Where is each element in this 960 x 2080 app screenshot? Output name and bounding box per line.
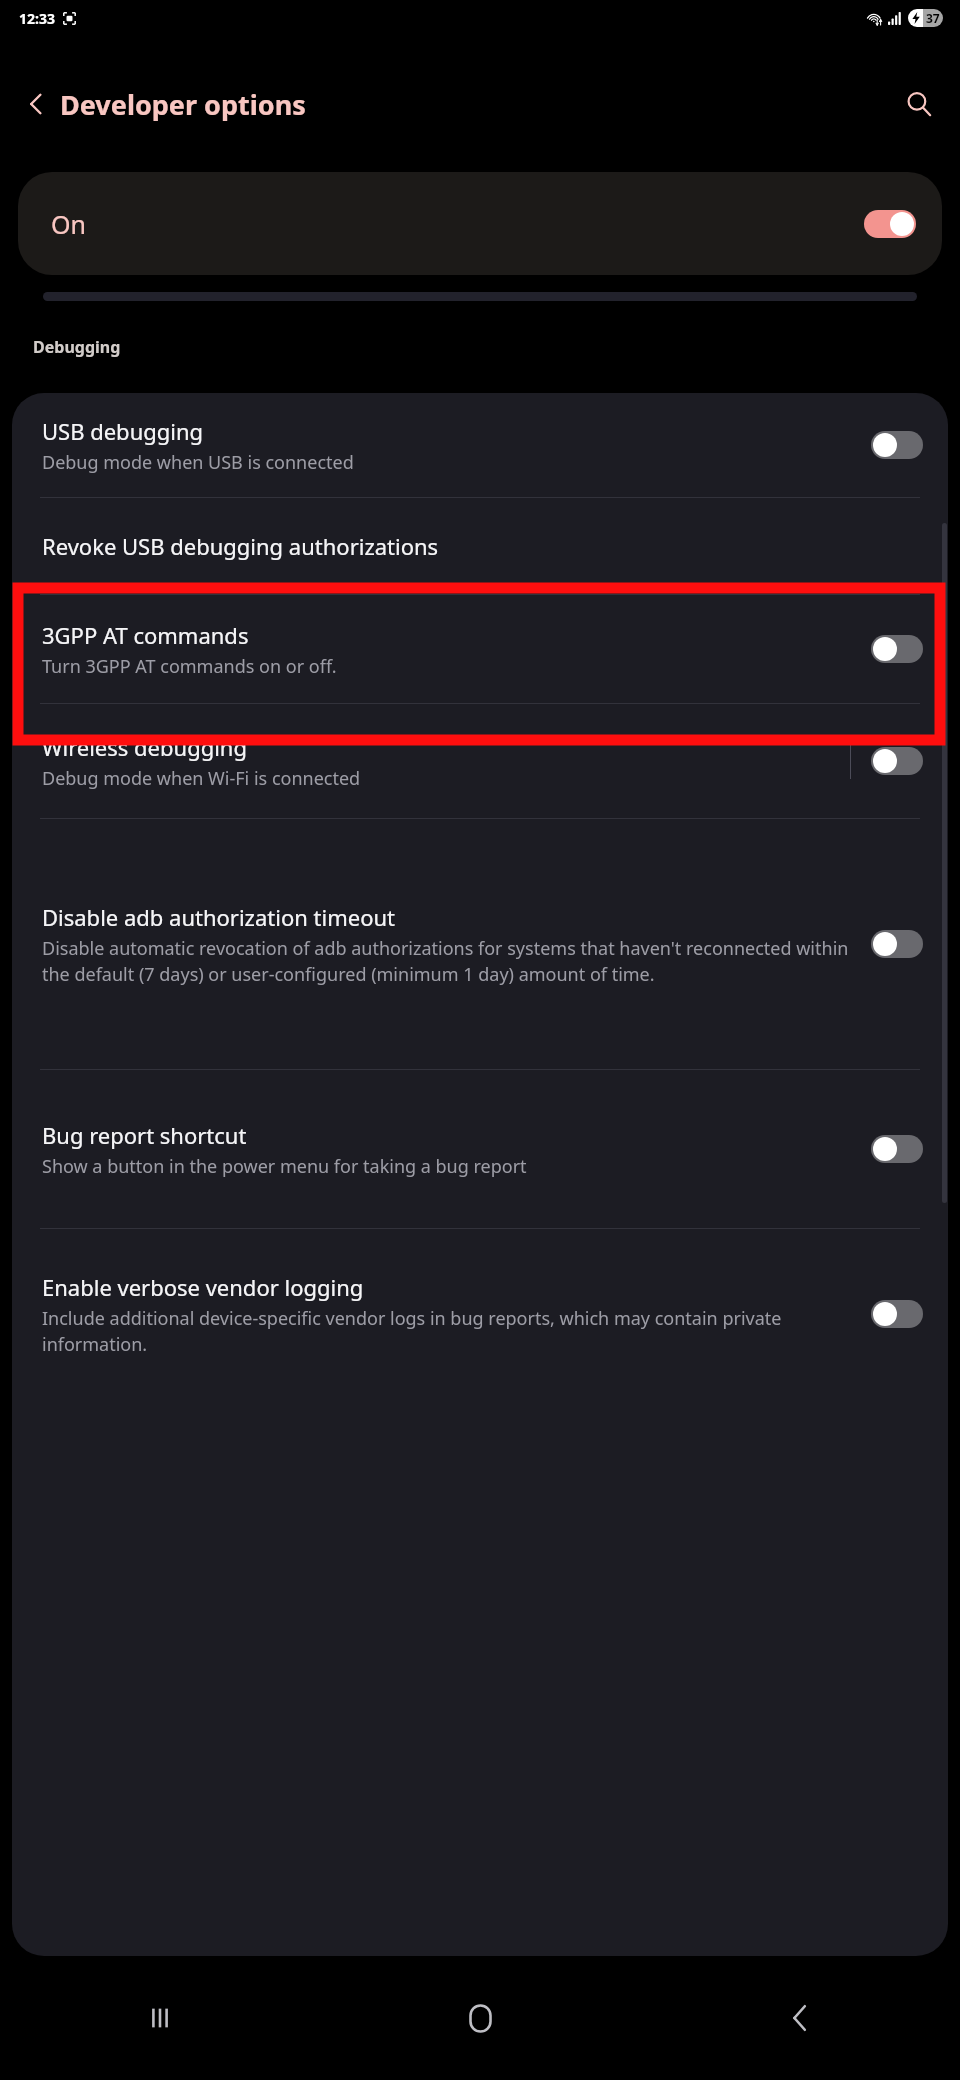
button[interactable]: Navigate up (8, 76, 64, 132)
button[interactable]: Off (871, 1300, 923, 1328)
staticText: Disable adb authorization timeout (42, 902, 395, 932)
staticText: Disable automatic revocation of adb auth… (42, 936, 863, 987)
button[interactable]: Bug report shortcut (12, 1070, 948, 1228)
staticText: 3GPP AT commands (42, 620, 249, 650)
button[interactable]: Off (871, 635, 923, 663)
button[interactable]: Search (890, 75, 948, 133)
staticText: Developer options (60, 86, 306, 123)
button[interactable]: 3GPP AT commands (12, 595, 948, 703)
button[interactable]: Revoke USB debugging authorizations (12, 498, 948, 594)
button[interactable]: Off (871, 1135, 923, 1163)
staticText: 12:33 (19, 9, 55, 28)
staticText: Enable verbose vendor logging (42, 1272, 364, 1302)
button[interactable]: Enable verbose vendor logging (12, 1229, 948, 1399)
button[interactable]: Off (871, 431, 923, 459)
staticText: Include additional device-specific vendo… (42, 1306, 863, 1357)
staticText: Debugging (33, 336, 121, 358)
button[interactable]: USB debugging (12, 393, 948, 497)
staticText: On (51, 207, 86, 241)
button[interactable]: Wireless debugging (12, 704, 948, 818)
staticText: Wireless debugging (42, 732, 247, 762)
staticText: Turn 3GPP AT commands on or off. (42, 654, 337, 679)
staticText: Revoke USB debugging authorizations (42, 531, 439, 561)
button[interactable]: Back (640, 1956, 960, 2080)
staticText: Show a button in the power menu for taki… (42, 1154, 527, 1179)
staticText: Debug mode when USB is connected (42, 450, 354, 475)
button[interactable]: Off (871, 747, 923, 775)
button[interactable]: Home (320, 1956, 640, 2080)
button[interactable]: Recent apps (0, 1956, 320, 2080)
staticText: 37 (926, 10, 940, 26)
button[interactable]: On (864, 210, 916, 238)
button[interactable]: Disable adb authorization timeout (12, 819, 948, 1069)
staticText: USB debugging (42, 416, 204, 446)
staticText: Debug mode when Wi-Fi is connected (42, 766, 361, 791)
button[interactable]: Off (871, 930, 923, 958)
staticText: Bug report shortcut (42, 1120, 247, 1150)
button[interactable]: On (18, 172, 942, 275)
